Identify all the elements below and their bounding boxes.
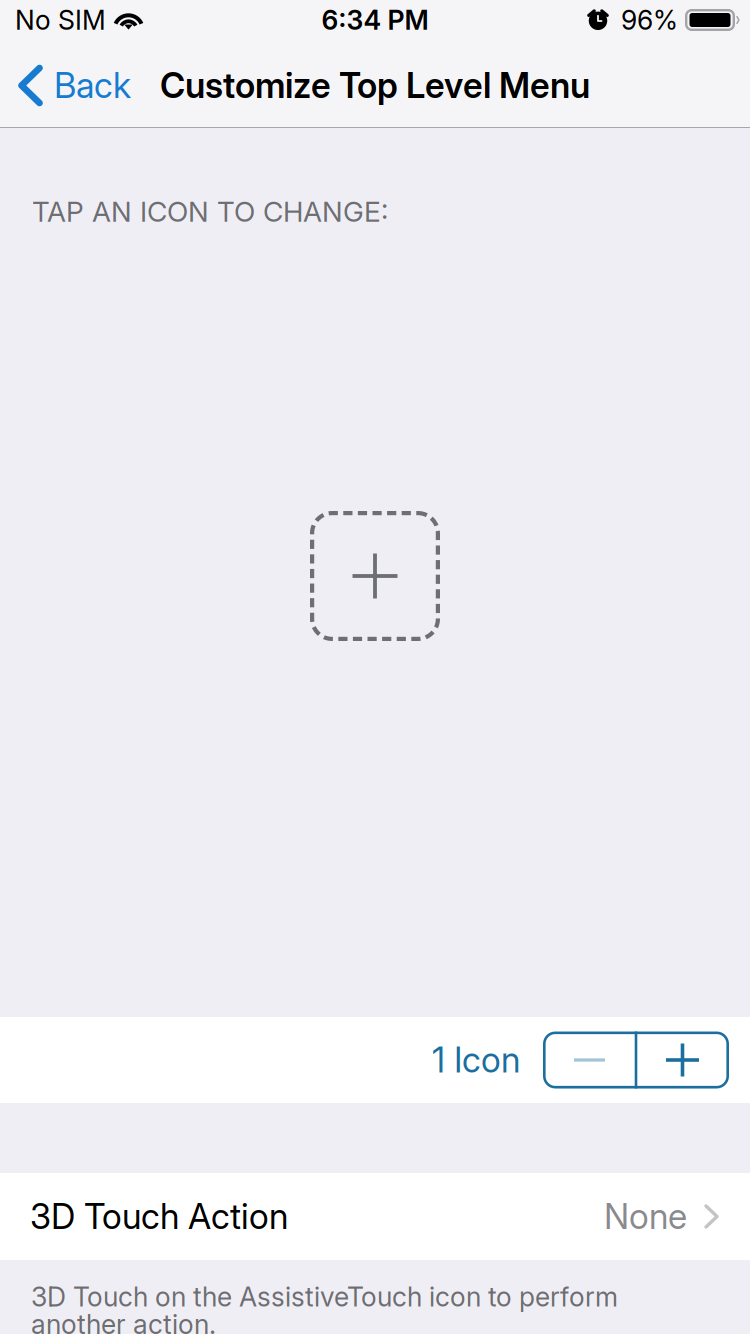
- staticText: Back: [54, 65, 131, 106]
- staticText: 6:34 PM: [321, 4, 428, 36]
- staticText: 3D Touch on the AssistiveTouch icon to p…: [31, 1281, 618, 1312]
- staticText: Customize Top Level Menu: [160, 65, 590, 106]
- staticText: None: [604, 1196, 687, 1237]
- staticText: another action.: [31, 1308, 216, 1334]
- staticText: 3D Touch Action: [30, 1196, 288, 1237]
- button[interactable]: 3D Touch Action: [0, 1173, 750, 1260]
- staticText: TAP AN ICON TO CHANGE:: [32, 195, 388, 228]
- button[interactable]: Add icon: [310, 511, 440, 641]
- button[interactable]: Back: [0, 44, 200, 127]
- staticText: No SIM: [15, 4, 106, 36]
- button[interactable]: Decrease: [543, 1031, 636, 1088]
- staticText: 96%: [621, 4, 678, 36]
- button[interactable]: Increase: [636, 1031, 729, 1088]
- staticText: 1 Icon: [432, 1040, 520, 1080]
